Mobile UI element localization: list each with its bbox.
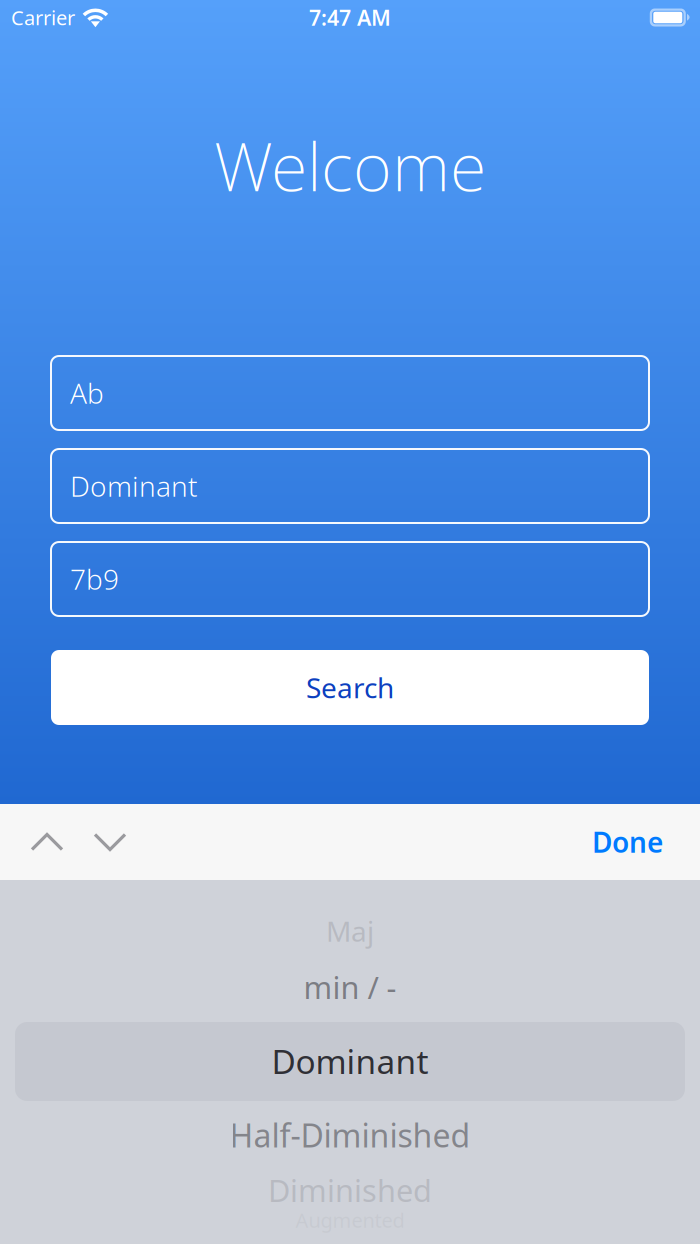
staticText: Dominant [271,1039,428,1083]
button[interactable]: Search [0,650,700,725]
button[interactable]: Next field [93,830,127,853]
button[interactable]: 7b9 [51,542,649,616]
staticText: Search [306,669,394,706]
button[interactable]: Dominant [0,1036,700,1086]
staticText: Ab [70,374,104,412]
button[interactable]: Ab [51,356,649,430]
button[interactable]: min / - [0,964,700,1010]
button[interactable]: Dominant [51,449,649,523]
staticText: 7:47 AM [309,3,391,32]
button[interactable]: Previous field [30,830,64,853]
staticText: 7b9 [70,560,119,598]
staticText: Welcome [214,121,486,209]
staticText: Maj [326,912,374,950]
button[interactable]: Half-Diminished [0,1111,700,1159]
staticText: min / - [303,967,396,1007]
staticText: Half-Diminished [229,1114,470,1156]
staticText: Carrier [11,4,75,31]
button[interactable]: Diminished [0,1167,700,1213]
staticText: Diminished [268,1170,432,1210]
staticText: Done [592,823,663,861]
button[interactable]: Done [592,823,663,861]
staticText: Dominant [70,467,198,505]
